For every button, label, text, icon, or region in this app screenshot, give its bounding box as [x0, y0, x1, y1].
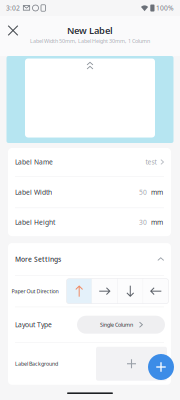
staticText: mm [151, 188, 163, 196]
button[interactable]: More Settings [8, 243, 171, 275]
staticText: Paper Out Direction [11, 288, 58, 295]
staticText: Label Background [15, 360, 58, 367]
button[interactable]: Add element [146, 352, 176, 382]
button[interactable]: Paper out right [92, 279, 117, 304]
button[interactable]: Label Height [8, 208, 171, 236]
staticText: 100% [156, 4, 174, 12]
staticText: Label Width 50mm, Label Height 30mm, 1 C… [30, 37, 150, 45]
button[interactable]: Label Name [8, 148, 171, 176]
staticText: Label Width [15, 188, 52, 196]
staticText: New Label [67, 24, 113, 37]
button[interactable]: Close [2, 20, 24, 40]
staticText: 50 [139, 188, 147, 196]
staticText: test [145, 158, 156, 166]
button[interactable]: Label Width [8, 177, 171, 208]
button[interactable]: Add background image [96, 347, 167, 381]
button[interactable]: Paper out down [118, 279, 143, 304]
staticText: 3:02 [6, 4, 20, 12]
staticText: Label Name [15, 158, 53, 166]
button[interactable]: Single Column [77, 316, 165, 334]
staticText: Single Column [100, 321, 133, 328]
staticText: More Settings [15, 255, 61, 264]
staticText: Layout Type [15, 320, 52, 329]
button[interactable]: Paper out left [143, 279, 168, 304]
staticText: Label Height [15, 218, 55, 227]
button[interactable]: Paper out up [67, 279, 92, 304]
staticText: mm [151, 218, 163, 227]
staticText: 30 [139, 218, 147, 227]
